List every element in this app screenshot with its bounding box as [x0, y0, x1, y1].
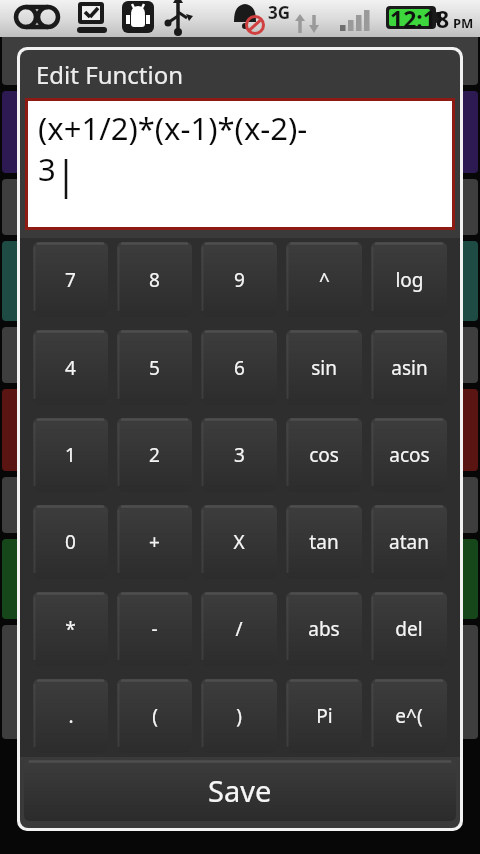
staticText: 1	[65, 442, 76, 468]
button[interactable]: .	[33, 679, 108, 753]
button[interactable]: 6	[201, 330, 277, 405]
button[interactable]: sin	[286, 330, 362, 405]
button[interactable]: /	[201, 592, 277, 666]
staticText: 6	[234, 355, 245, 381]
staticText: asin	[391, 355, 428, 381]
staticText: +	[149, 529, 160, 555]
staticText: -	[151, 616, 158, 642]
staticText: 12:18	[390, 3, 450, 34]
button[interactable]: del	[371, 592, 447, 666]
staticText: ^	[319, 267, 330, 293]
button[interactable]: e^(	[371, 679, 447, 753]
button[interactable]: 7	[33, 242, 108, 317]
staticText: atan	[389, 529, 429, 555]
button[interactable]: -	[117, 592, 192, 666]
button[interactable]: *	[33, 592, 108, 666]
staticText: 0	[65, 529, 76, 555]
staticText: log	[395, 267, 424, 293]
staticText: Save	[208, 771, 272, 810]
button[interactable]: +	[117, 505, 192, 579]
staticText: abs	[308, 616, 340, 642]
button[interactable]: ^	[286, 242, 362, 317]
staticText: /	[235, 616, 243, 642]
staticText: 9	[234, 267, 245, 293]
staticText: PM	[453, 14, 474, 32]
button[interactable]: 2	[117, 418, 192, 492]
button[interactable]: 5	[117, 330, 192, 405]
button[interactable]: log	[371, 242, 447, 317]
staticText: Graph it	[6, 3, 75, 26]
button[interactable]: )	[201, 679, 277, 753]
staticText: del	[395, 616, 423, 642]
staticText: sin	[311, 355, 337, 381]
staticText: X	[233, 529, 245, 555]
button[interactable]: 4	[33, 330, 108, 405]
button[interactable]: X	[201, 505, 277, 579]
staticText: 3G	[268, 1, 291, 24]
staticText: Pi	[316, 703, 333, 729]
button[interactable]: 0	[33, 505, 108, 579]
staticText: )	[236, 703, 242, 729]
staticText: acos	[389, 442, 430, 468]
staticText: e^(	[395, 703, 423, 729]
staticText: (	[152, 703, 158, 729]
staticText: cos	[309, 442, 339, 468]
staticText: .	[68, 703, 74, 729]
staticText: *	[65, 616, 76, 642]
staticText: 8	[149, 267, 160, 293]
button[interactable]: 1	[33, 418, 108, 492]
button[interactable]: 8	[117, 242, 192, 317]
button[interactable]: acos	[371, 418, 447, 492]
button[interactable]: Save	[24, 760, 456, 821]
staticText: 7	[65, 267, 76, 293]
button[interactable]: atan	[371, 505, 447, 579]
button[interactable]: tan	[286, 505, 362, 579]
button[interactable]: 3	[201, 418, 277, 492]
button[interactable]: abs	[286, 592, 362, 666]
staticText: 4	[65, 355, 76, 381]
staticText: Edit Function	[36, 58, 184, 91]
button[interactable]: 9	[201, 242, 277, 317]
staticText: 5	[149, 355, 160, 381]
button[interactable]: (	[117, 679, 192, 753]
staticText: (x+1/2)*(x-1)*(x-2)- 3	[38, 107, 308, 190]
staticText: 3	[234, 442, 245, 468]
staticText: 2	[149, 442, 160, 468]
button[interactable]: (x+1/2)*(x-1)*(x-2)- 3	[28, 101, 452, 227]
button[interactable]: asin	[371, 330, 447, 405]
button[interactable]: Pi	[286, 679, 362, 753]
staticText: tan	[309, 529, 339, 555]
button[interactable]: cos	[286, 418, 362, 492]
